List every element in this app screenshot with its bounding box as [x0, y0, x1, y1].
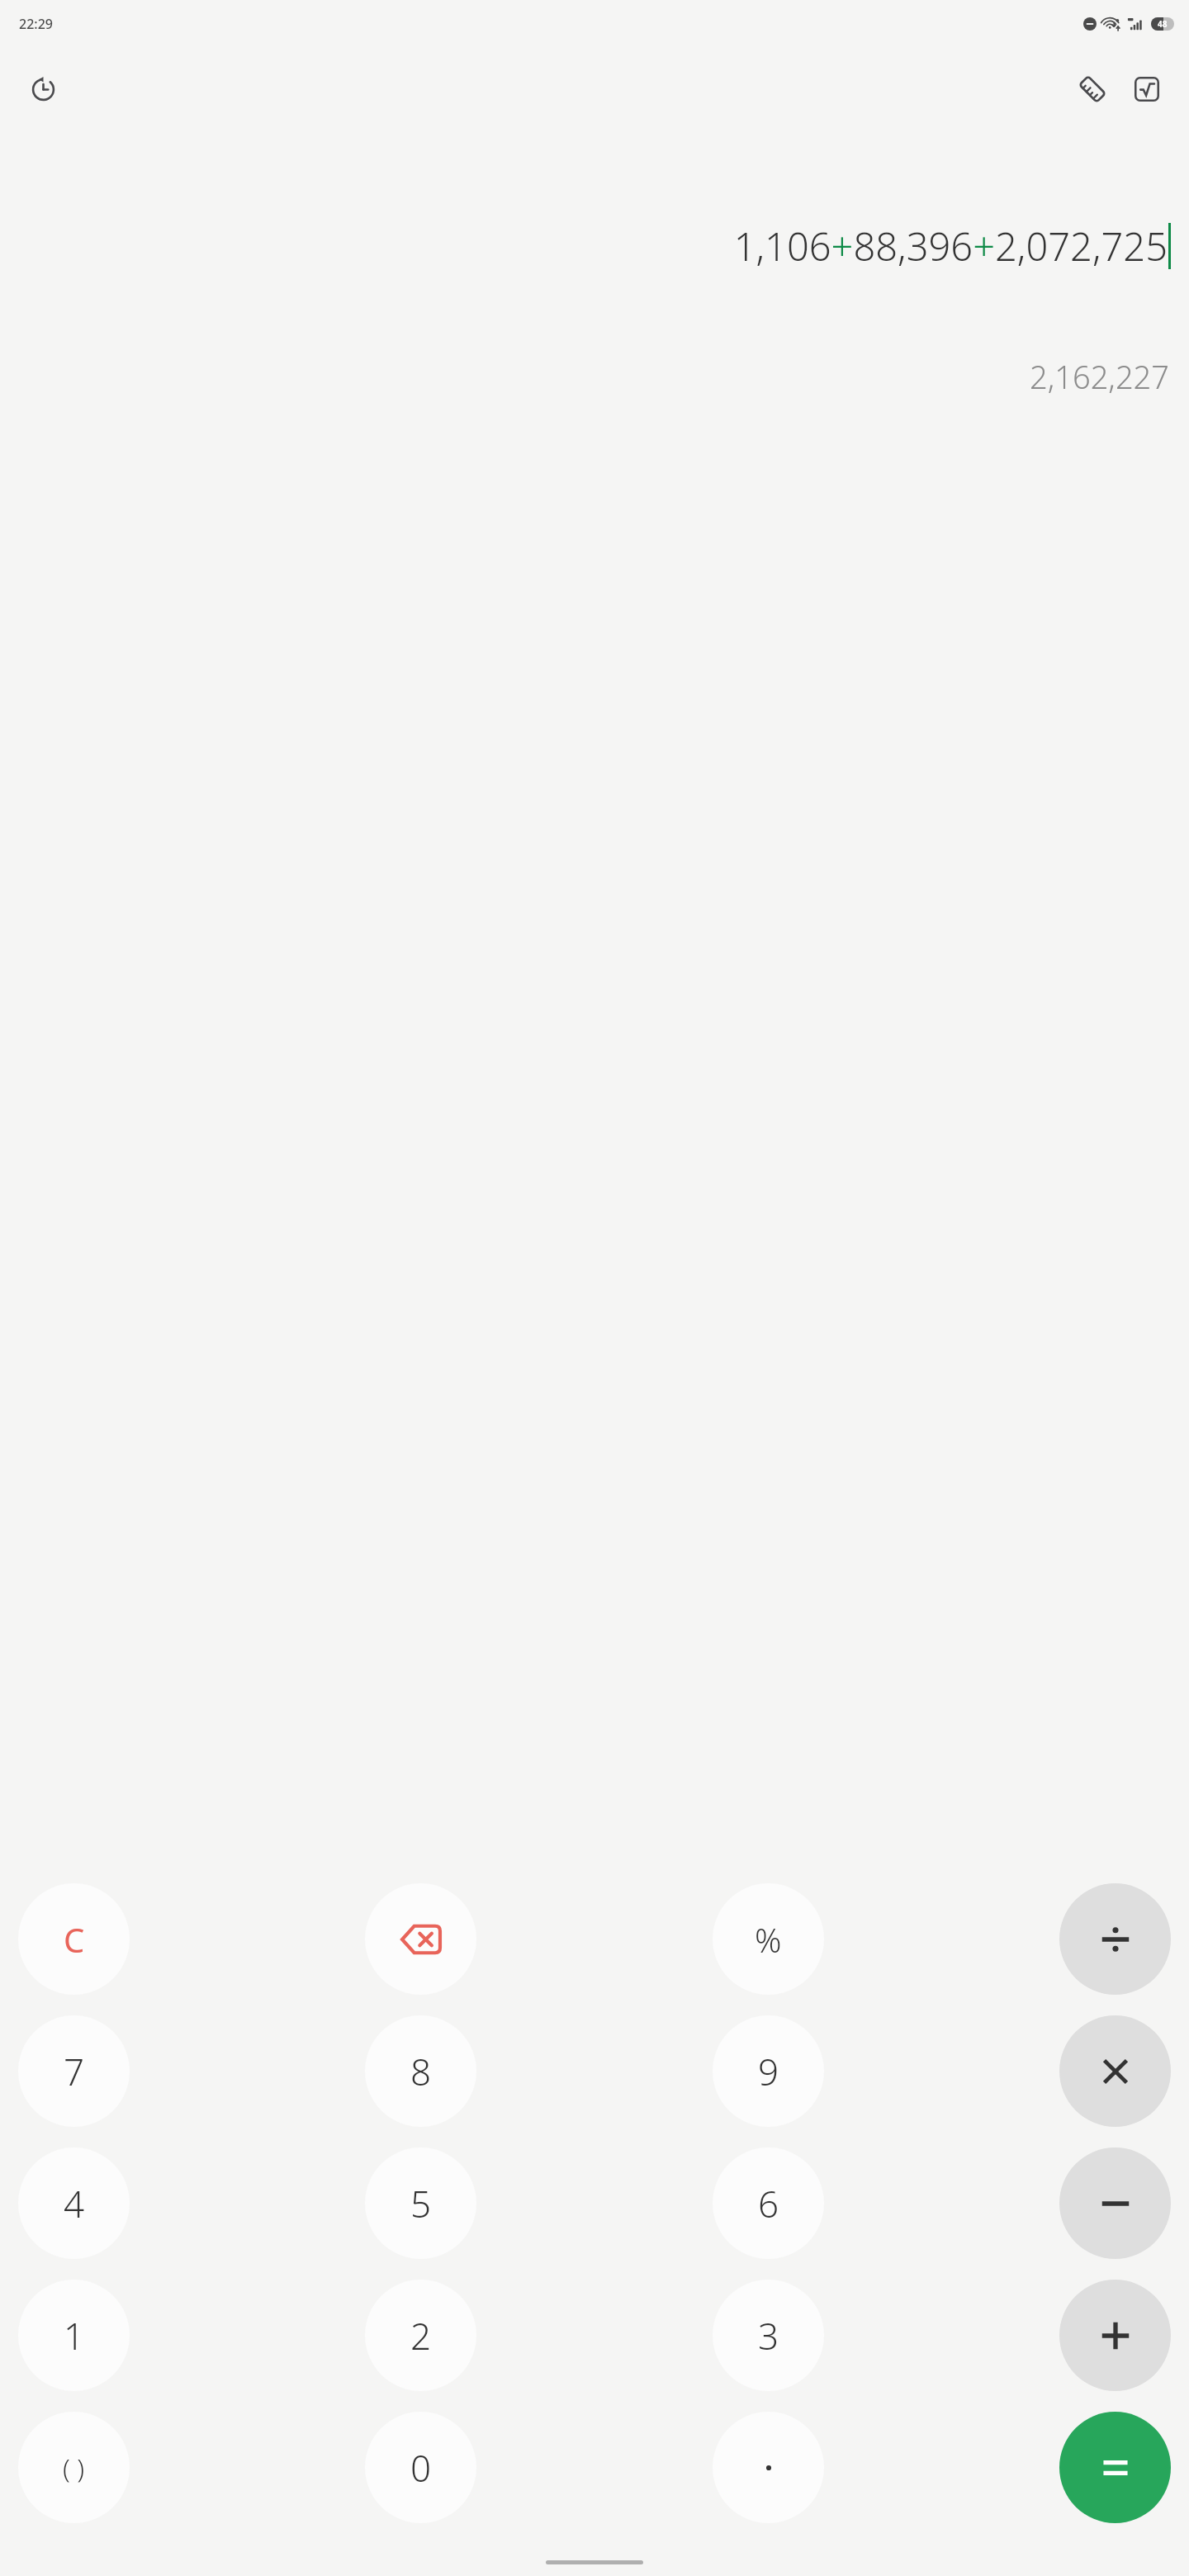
staticText: 8: [410, 2047, 432, 2096]
button[interactable]: Decimal point: [713, 2412, 824, 2523]
button[interactable]: Backspace: [365, 1883, 476, 1995]
button[interactable]: 4: [18, 2147, 130, 2259]
staticText: 6: [758, 2179, 779, 2228]
staticText: 2: [410, 2311, 432, 2361]
button[interactable]: Scientific mode: [1125, 67, 1169, 111]
button[interactable]: 1: [18, 2280, 130, 2391]
button[interactable]: 7: [18, 2015, 130, 2127]
staticText: C: [64, 1917, 85, 1962]
button[interactable]: 8: [365, 2015, 476, 2127]
staticText: 2,162,227: [0, 355, 1169, 398]
button[interactable]: Unit converter: [1070, 67, 1115, 111]
staticText: 5: [410, 2179, 432, 2228]
staticText: 1: [64, 2311, 85, 2361]
button[interactable]: ( ): [18, 2412, 130, 2523]
staticText: 0: [410, 2443, 432, 2493]
button[interactable]: 6: [713, 2147, 824, 2259]
button[interactable]: 9: [713, 2015, 824, 2127]
button[interactable]: %: [713, 1883, 824, 1995]
button[interactable]: Divide: [1059, 1883, 1171, 1995]
staticText: 22:29: [19, 15, 53, 33]
staticText: 3: [758, 2311, 779, 2361]
button[interactable]: Minus: [1059, 2147, 1171, 2259]
staticText: 9: [758, 2047, 779, 2096]
staticText: %: [755, 1917, 782, 1962]
staticText: 4: [64, 2179, 85, 2228]
button[interactable]: Equals: [1059, 2412, 1171, 2523]
staticText: ( ): [63, 2450, 85, 2486]
button[interactable]: 3: [713, 2280, 824, 2391]
button[interactable]: Plus: [1059, 2280, 1171, 2391]
staticText: 1,106+88,396+2,072,725: [733, 220, 1168, 272]
staticText: 48: [1158, 18, 1168, 30]
button[interactable]: Multiply: [1059, 2015, 1171, 2127]
button[interactable]: History: [21, 68, 64, 111]
button[interactable]: 0: [365, 2412, 476, 2523]
button[interactable]: C: [18, 1883, 130, 1995]
staticText: 7: [64, 2047, 85, 2096]
button[interactable]: 5: [365, 2147, 476, 2259]
button[interactable]: 2: [365, 2280, 476, 2391]
